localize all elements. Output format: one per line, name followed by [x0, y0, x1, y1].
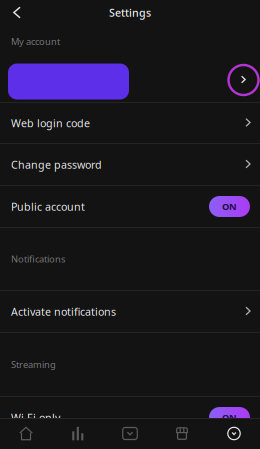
button[interactable]: Activate notifications — [0, 291, 260, 332]
button[interactable]: Charts — [52, 418, 104, 449]
staticText: Wi-Fi only — [11, 410, 60, 425]
staticText: My account — [11, 35, 60, 48]
staticText: Settings — [109, 5, 151, 20]
button[interactable]: Back — [0, 0, 21, 24]
button[interactable]: Store — [156, 418, 208, 449]
staticText: ON — [222, 411, 237, 424]
button[interactable]: Home — [0, 418, 52, 449]
staticText: Public account — [11, 199, 85, 214]
staticText: Web login code — [11, 116, 90, 130]
button[interactable]: Wi-Fi only — [0, 397, 260, 438]
staticText: ON — [222, 200, 237, 213]
staticText: Activate notifications — [11, 304, 116, 319]
button[interactable]: Web login code — [0, 103, 260, 143]
button[interactable]: Account — [208, 418, 260, 449]
button[interactable]: Downloads — [104, 418, 156, 449]
staticText: Change password — [11, 157, 102, 172]
button[interactable]: Public account — [0, 186, 260, 227]
staticText: Notifications — [11, 253, 65, 265]
staticText: Streaming — [11, 358, 56, 371]
button[interactable]: Change password — [0, 144, 260, 185]
button[interactable] — [0, 58, 260, 102]
